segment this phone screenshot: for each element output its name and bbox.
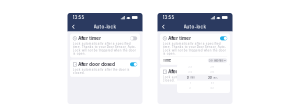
staticText: 23 <box>188 65 192 68</box>
button[interactable]: Back <box>157 22 169 31</box>
button[interactable]: Back <box>67 22 79 31</box>
staticText: Time <box>163 58 171 63</box>
staticText: 30 seconds <box>209 59 223 62</box>
staticText: 2 <box>189 87 191 90</box>
staticText: After timer <box>168 36 191 41</box>
staticText: Auto-lock <box>93 24 116 29</box>
staticText: 32 <box>210 87 214 90</box>
button[interactable]: Turn on <box>130 36 137 40</box>
staticText: 1 <box>190 82 191 85</box>
staticText: 13:55 <box>162 15 174 20</box>
staticText: min <box>190 76 195 79</box>
staticText: 13:55 <box>72 15 84 20</box>
staticText: After door closed <box>168 69 205 74</box>
staticText: 29 <box>210 65 214 68</box>
staticText: 24 <box>188 70 192 73</box>
button[interactable]: After door closed <box>160 67 230 84</box>
staticText: Lock automatically after a specified tim… <box>163 42 226 55</box>
staticText: Lock automatically after a specified tim… <box>73 42 136 55</box>
staticText: Auto-lock <box>183 24 206 29</box>
button[interactable]: After timer <box>70 34 140 57</box>
button[interactable]: After timer <box>160 34 230 65</box>
staticText: 0 <box>187 76 189 79</box>
staticText: Lock automatically after the door is clo… <box>163 75 220 82</box>
staticText: After timer <box>78 36 101 41</box>
staticText: sec <box>213 76 218 79</box>
staticText: After door closed <box>78 62 115 67</box>
staticText: 29 <box>210 70 214 73</box>
staticText: 30 <box>208 76 212 79</box>
staticText: 31 <box>211 82 214 85</box>
button[interactable]: Turn off <box>130 62 137 66</box>
button[interactable]: Turn off <box>220 36 227 40</box>
button[interactable]: After door closed <box>70 60 140 77</box>
button[interactable]: Time <box>163 58 227 63</box>
staticText: Lock automatically after the door is clo… <box>73 68 130 75</box>
